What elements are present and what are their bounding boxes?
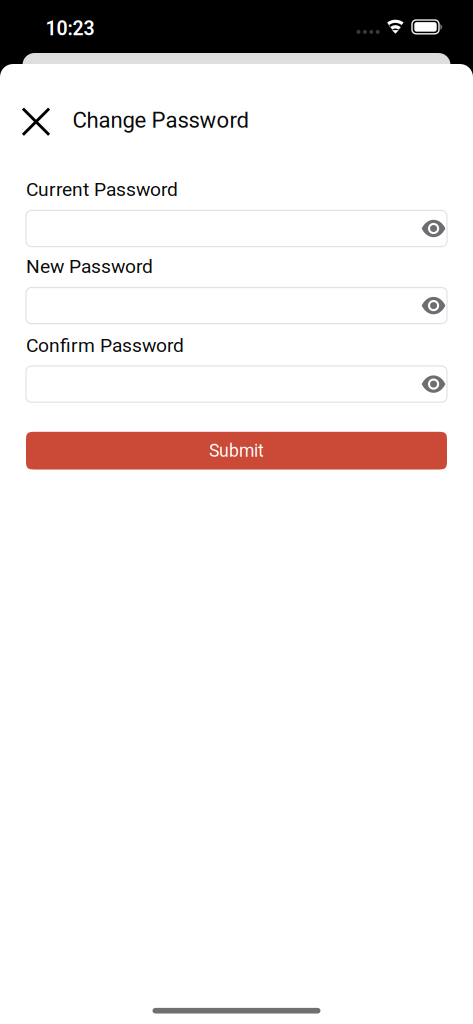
staticText: 10:23 (46, 17, 95, 40)
staticText: Submit (209, 440, 264, 461)
staticText: Change Password (73, 107, 249, 133)
staticText: New Password (26, 255, 153, 278)
button[interactable]: Show password (409, 287, 447, 324)
staticText: Confirm Password (26, 334, 184, 357)
button[interactable]: Submit (26, 432, 447, 469)
staticText: Current Password (26, 178, 178, 201)
button[interactable]: Show password (409, 210, 447, 247)
button[interactable]: Show password (409, 366, 447, 402)
button[interactable]: Close (0, 107, 73, 136)
